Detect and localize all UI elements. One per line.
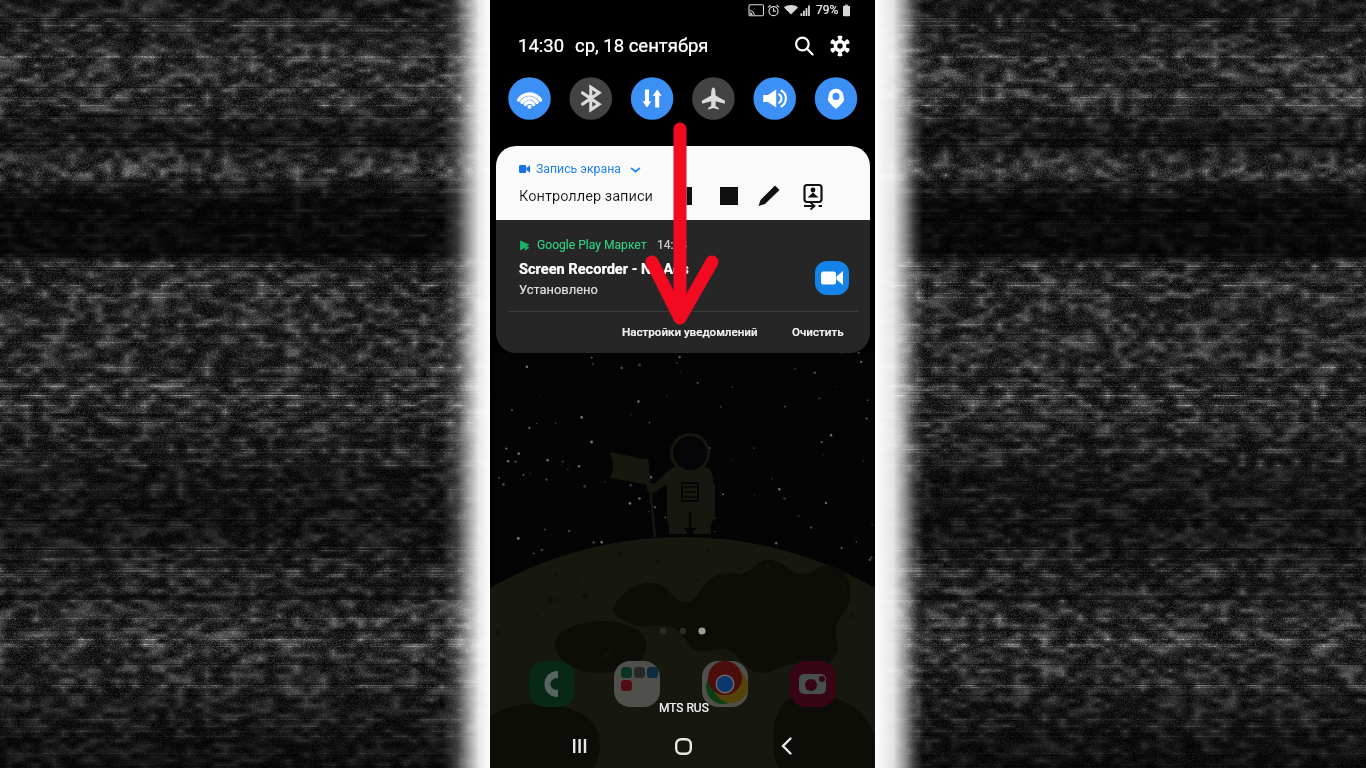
staticText: 79% (816, 3, 839, 17)
staticText: Установлено (519, 282, 598, 297)
button[interactable]: Запись экрана (496, 146, 870, 220)
button[interactable]: Настройки уведомлений (617, 316, 763, 348)
button[interactable]: Settings (824, 30, 856, 62)
button[interactable]: Search (788, 30, 820, 62)
button[interactable]: Очистить (787, 316, 849, 348)
staticText: Запись экрана (536, 162, 621, 176)
staticText: Контроллер записи (519, 187, 654, 204)
staticText: Google Play Маркет (537, 238, 647, 252)
button[interactable]: Google Play Маркет (496, 220, 870, 311)
button[interactable]: Home (660, 723, 706, 768)
button[interactable]: Recents (556, 723, 602, 768)
staticText: 14:30 (518, 35, 565, 57)
staticText: Очистить (792, 325, 844, 339)
staticText: MTS RUS (659, 701, 709, 715)
staticText: Screen Recorder - No Ads (519, 260, 689, 277)
staticText: 14:28 (657, 238, 688, 252)
staticText: Настройки уведомлений (622, 325, 758, 339)
staticText: ср, 18 сентября (575, 35, 709, 57)
button[interactable]: Back (764, 723, 810, 768)
